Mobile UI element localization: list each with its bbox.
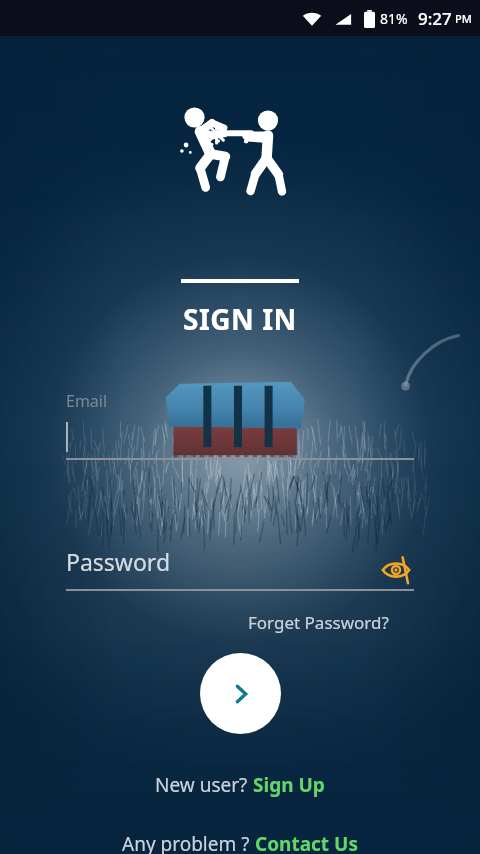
staticText: New user? [155, 772, 253, 798]
button[interactable]: Any problem ? [116, 828, 364, 854]
staticText: PM [455, 11, 472, 26]
staticText: Forget Password? [248, 611, 389, 634]
staticText: 81% [380, 9, 408, 28]
button[interactable]: Email [66, 390, 414, 460]
staticText: 9:27 [418, 7, 452, 30]
staticText: Any problem ? [122, 831, 255, 854]
button[interactable]: New user? [149, 769, 331, 801]
button[interactable]: Forget Password? [244, 609, 393, 636]
button[interactable]: Show password [378, 552, 414, 588]
staticText: Sign Up [253, 772, 325, 798]
button[interactable]: Password [66, 546, 414, 591]
staticText: Password [66, 546, 171, 577]
button[interactable]: Sign in [200, 653, 281, 734]
staticText: SIGN IN [183, 300, 297, 338]
staticText: Contact Us [255, 831, 358, 854]
staticText: Email [66, 390, 108, 412]
